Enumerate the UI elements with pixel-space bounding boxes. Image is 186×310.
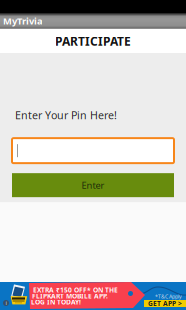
staticText: GET APP > (148, 299, 182, 308)
button[interactable]: Flipkart advertisement, get the app (0, 282, 186, 310)
staticText: Enter (81, 179, 104, 191)
staticText: EXTRA ₹150 OFF* ON THE (33, 285, 118, 294)
staticText: Enter Your Pin Here! (15, 108, 117, 122)
staticText: FLIPKART MOBILE APP. (32, 291, 108, 300)
staticText: MyTrivia (3, 15, 43, 27)
staticText: *T&C Apply (155, 293, 182, 300)
button[interactable]: Enter (12, 173, 174, 197)
staticText: LOG IN TODAY! (31, 297, 81, 306)
staticText: PARTICIPATE (55, 33, 131, 49)
button[interactable] (12, 138, 174, 163)
